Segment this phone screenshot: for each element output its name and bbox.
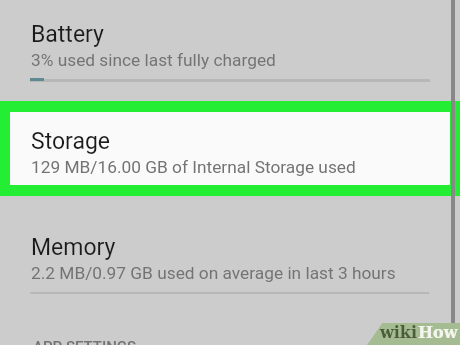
staticText: 129 MB/16.00 GB of Internal Storage used [31,157,356,177]
button[interactable]: Memory [0,196,460,292]
staticText: Battery [31,21,104,48]
other: Scroll position [451,0,455,345]
staticText: Memory [31,234,116,261]
staticText: Storage [31,128,111,155]
staticText: APP SETTINGS [33,338,137,345]
staticText: wiki [380,323,418,342]
button[interactable]: Storage [10,112,450,185]
staticText: 3% used since last fully charged [31,50,276,70]
staticText: How [418,323,458,342]
staticText: 2.2 MB/0.97 GB used on average in last 3… [31,263,396,283]
button[interactable]: Battery [0,0,460,101]
